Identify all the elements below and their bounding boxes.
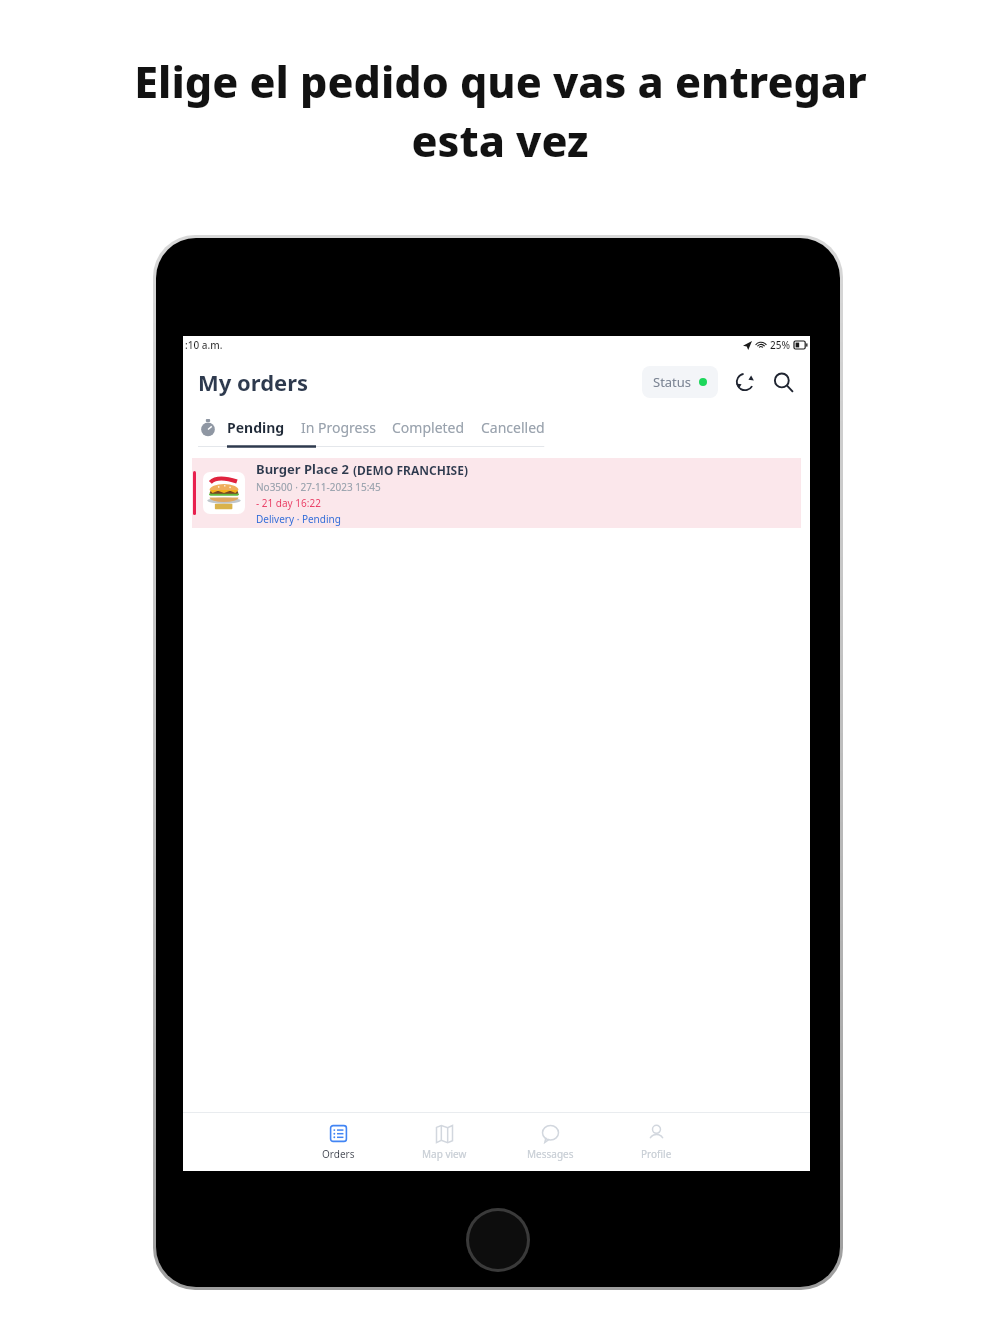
staticText: esta vez: [411, 111, 589, 170]
staticText: Status: [653, 373, 692, 391]
staticText: Completed: [392, 418, 465, 437]
staticText: Cancelled: [481, 418, 545, 437]
staticText: Messages: [527, 1147, 574, 1161]
staticText: Delivery · Pending: [256, 512, 341, 526]
staticText: Orders: [322, 1147, 355, 1161]
button[interactable]: Burger Place 2: [192, 458, 801, 528]
staticText: Map view: [422, 1147, 467, 1161]
button[interactable]: Home: [466, 1208, 530, 1272]
staticText: (DEMO FRANCHISE): [353, 462, 468, 478]
button[interactable]: Cancelled: [481, 410, 545, 445]
staticText: My orders: [198, 367, 309, 397]
button[interactable]: Pending: [227, 410, 285, 445]
staticText: Burger Place 2: [256, 460, 353, 478]
button[interactable]: Status: [642, 366, 718, 398]
staticText: Profile: [641, 1147, 672, 1161]
button[interactable]: Messages: [514, 1120, 586, 1165]
staticText: - 21 day 16:22: [256, 496, 321, 510]
button[interactable]: Profile: [620, 1120, 692, 1165]
staticText: No3500 · 27-11-2023 15:45: [256, 480, 381, 494]
button[interactable]: Map view: [408, 1120, 480, 1165]
staticText: 25%: [770, 338, 790, 352]
button[interactable]: In Progress: [301, 410, 376, 445]
staticText: :10 a.m.: [185, 338, 223, 352]
button[interactable]: Refresh: [730, 367, 760, 397]
staticText: In Progress: [301, 418, 376, 437]
button[interactable]: Completed: [392, 410, 465, 445]
staticText: Pending: [227, 418, 285, 437]
button[interactable]: Search: [768, 367, 798, 397]
button[interactable]: Orders: [302, 1120, 374, 1165]
staticText: Elige el pedido que vas a entregar: [134, 52, 867, 111]
